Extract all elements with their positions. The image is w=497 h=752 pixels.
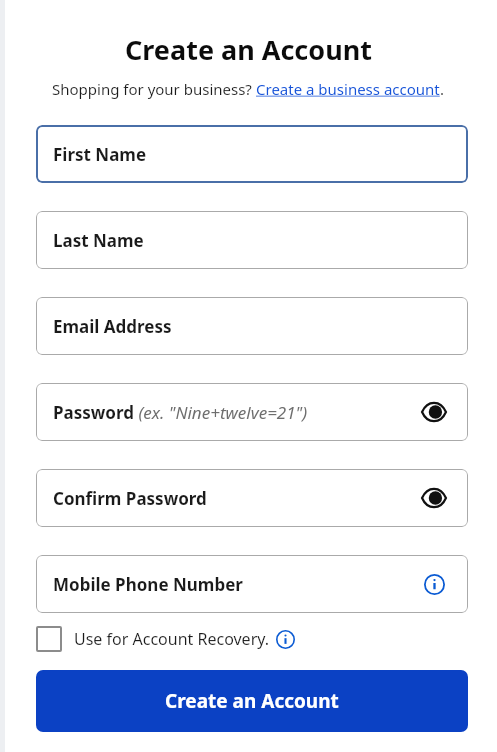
staticText: Create a business account [256, 79, 440, 99]
button[interactable]: Show password [417, 395, 451, 429]
button[interactable]: Use for Account Recovery. [36, 626, 295, 652]
button[interactable]: Create an Account [36, 670, 468, 732]
button[interactable]: Last Name [36, 211, 468, 269]
button[interactable]: Show confirm password [417, 481, 451, 515]
staticText: Password (ex. "Nine+twelve=21") [53, 401, 308, 424]
staticText: Shopping for your business? [52, 79, 256, 99]
button[interactable]: Password (ex. "Nine+twelve=21") [36, 383, 468, 441]
button[interactable]: Email Address [36, 297, 468, 355]
button[interactable]: Confirm Password [36, 469, 468, 527]
staticText: Last Name [53, 229, 144, 252]
staticText: Use for Account Recovery. [74, 628, 270, 650]
staticText: Mobile Phone Number [53, 573, 243, 596]
staticText: Confirm Password [53, 487, 207, 510]
button[interactable]: Mobile Phone Number [36, 555, 468, 613]
staticText: . [440, 79, 445, 99]
button[interactable]: First Name [36, 125, 468, 183]
button[interactable]: Phone number information [417, 567, 451, 601]
button[interactable]: Create a business account [256, 79, 440, 99]
staticText: Create an Account [165, 688, 339, 714]
staticText: Create an Account [0, 31, 497, 68]
staticText: Email Address [53, 315, 172, 338]
staticText: First Name [53, 143, 147, 166]
